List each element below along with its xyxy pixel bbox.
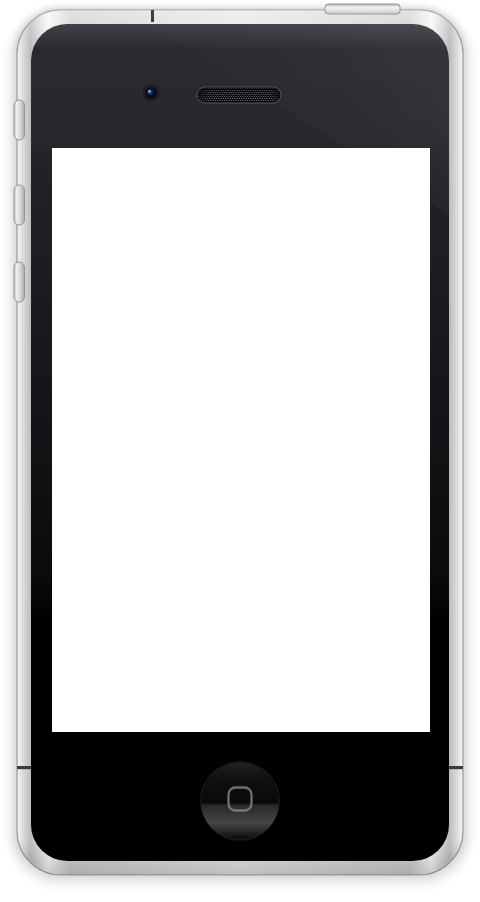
button[interactable]: iPhone device mockup with blank screen [0,0,480,902]
